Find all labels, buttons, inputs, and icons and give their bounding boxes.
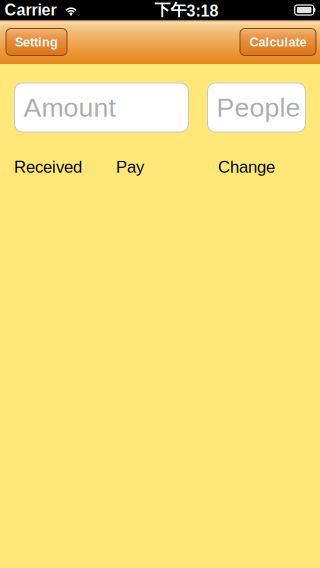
staticText: Setting: [15, 35, 58, 49]
staticText: People: [216, 93, 300, 122]
staticText: Received: [14, 158, 82, 176]
staticText: Change: [218, 158, 275, 176]
staticText: Pay: [116, 158, 144, 176]
button[interactable]: Calculate: [240, 28, 316, 55]
staticText: 下午3:18: [154, 0, 218, 20]
staticText: Amount: [23, 93, 115, 122]
staticText: Calculate: [249, 35, 306, 49]
button[interactable]: Setting: [6, 28, 67, 55]
staticText: Carrier: [4, 1, 56, 19]
